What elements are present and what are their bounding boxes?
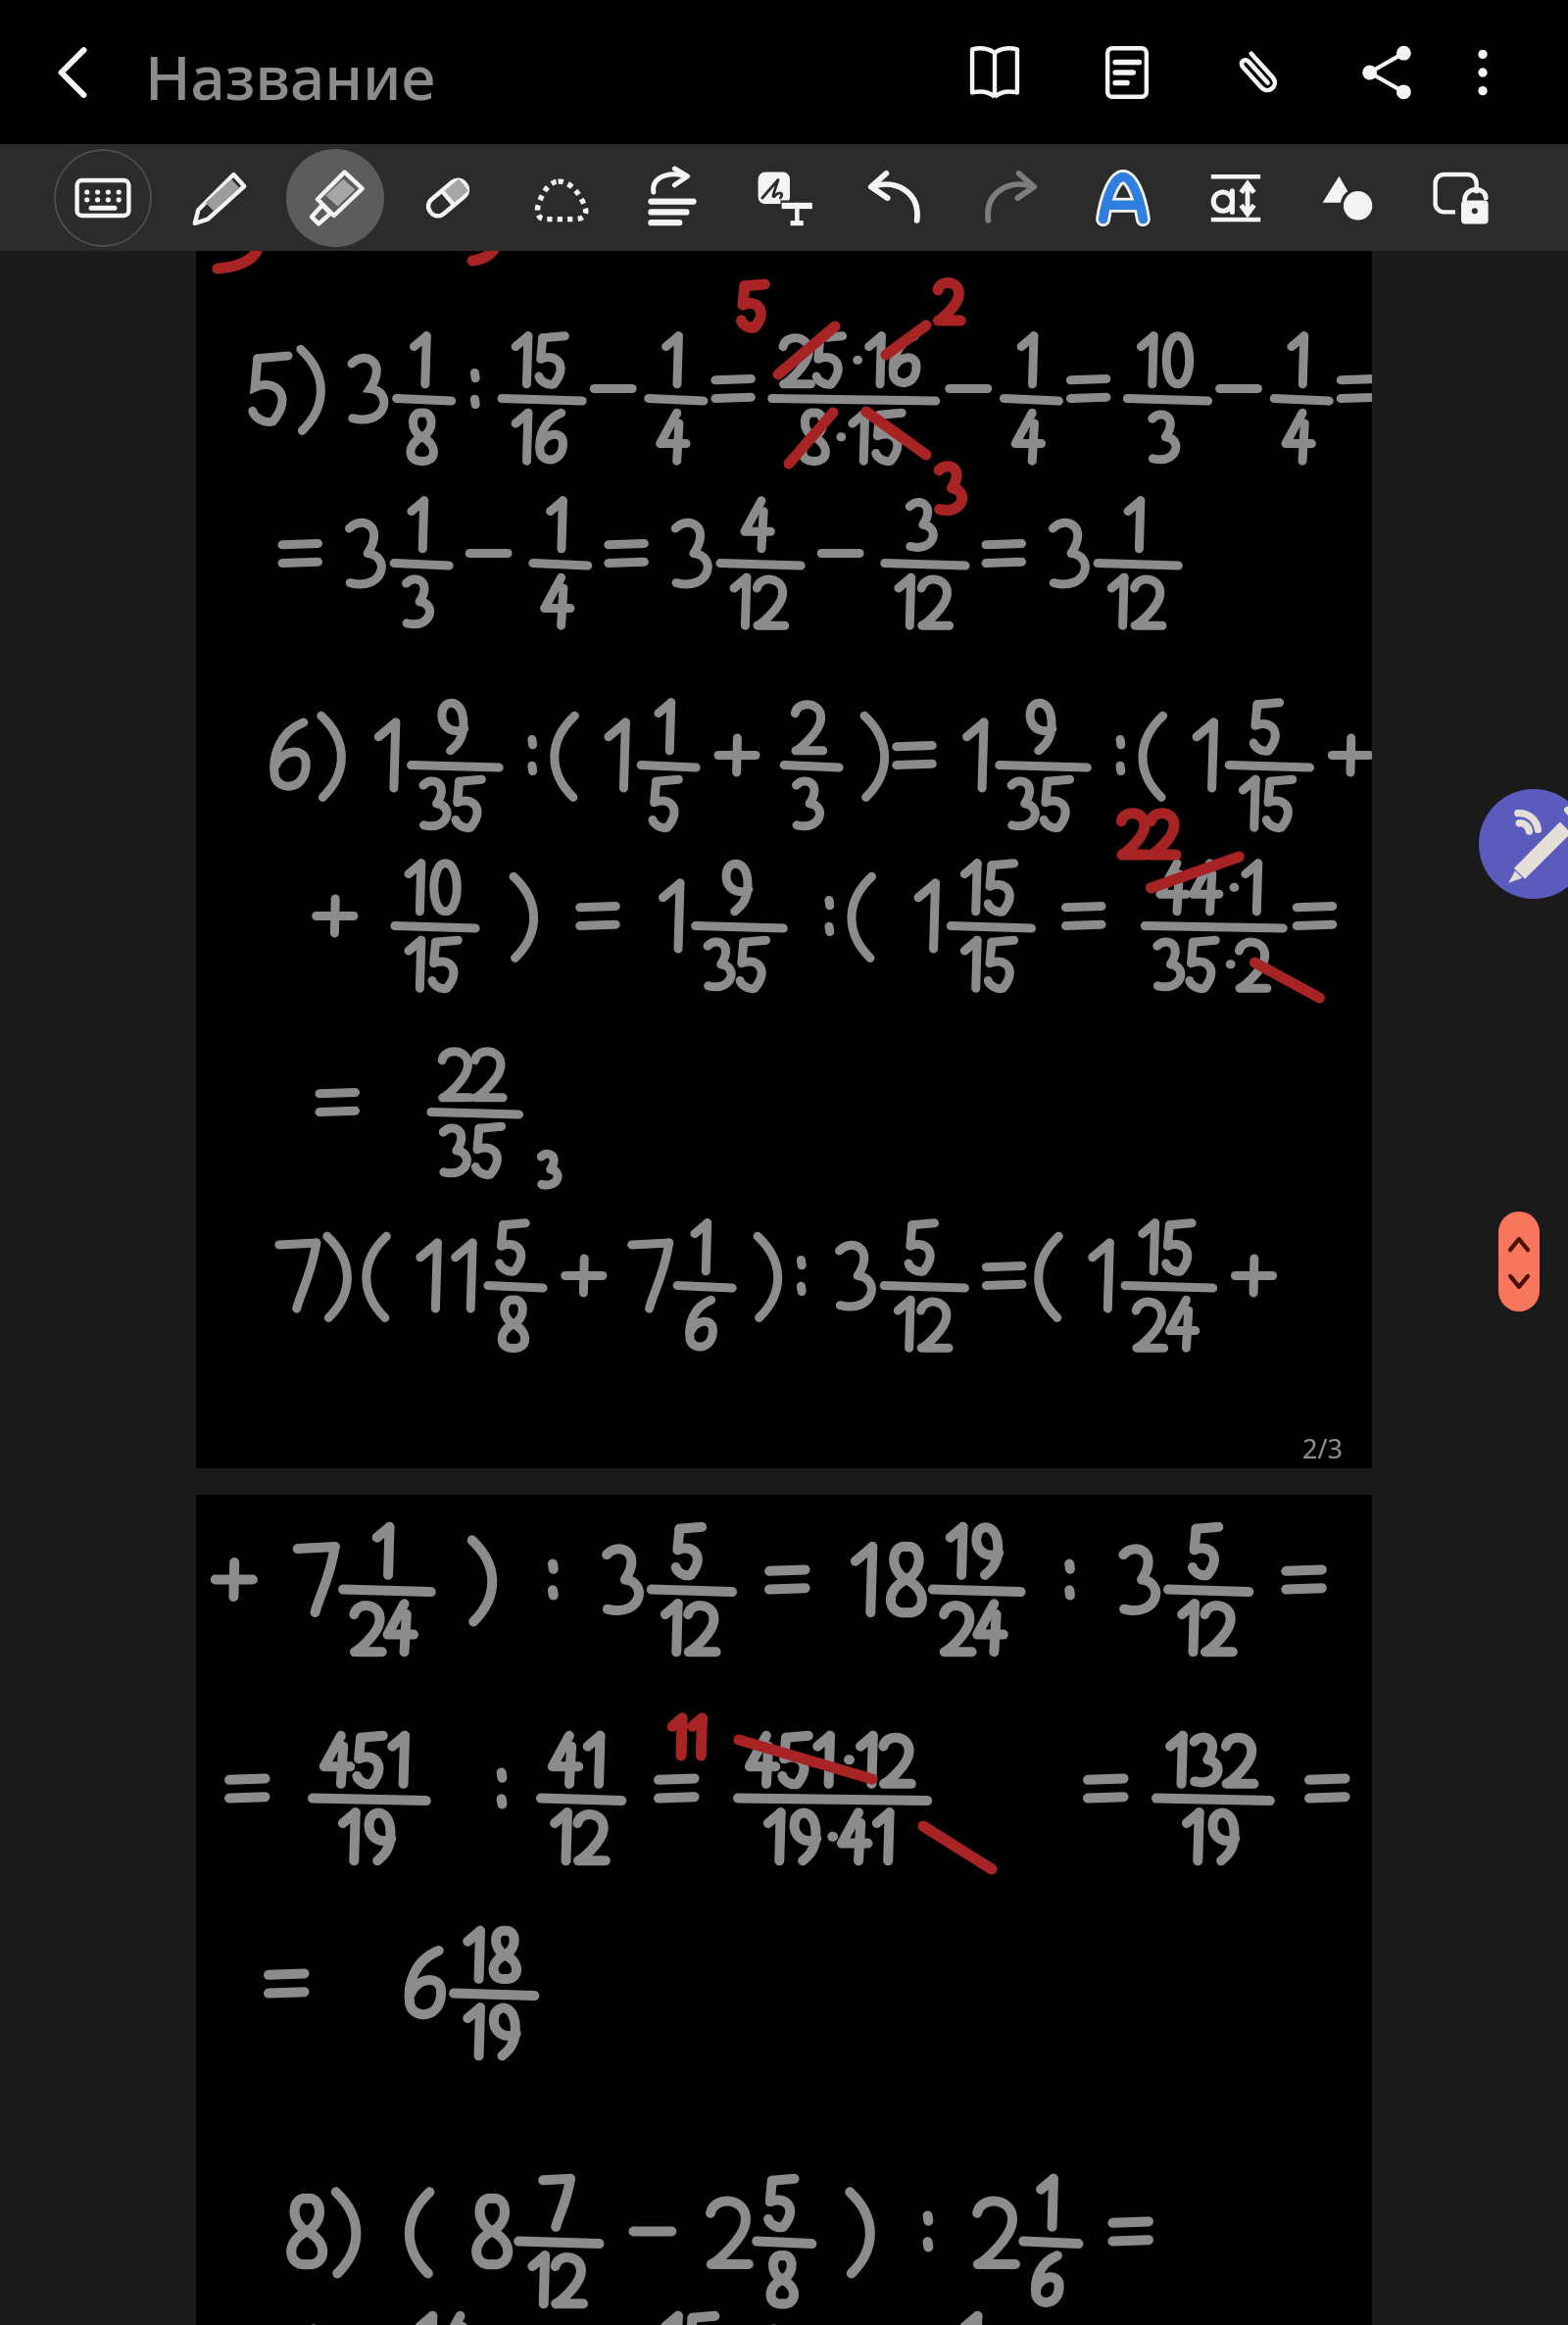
button[interactable]: Lock canvas (1410, 144, 1512, 251)
button[interactable]: Notes (1076, 22, 1178, 124)
button[interactable]: Share (1336, 22, 1438, 124)
button[interactable]: Auto format (1072, 144, 1174, 251)
button[interactable]: Shapes (1298, 144, 1399, 251)
button[interactable]: Note page 2 (196, 251, 1372, 1468)
button[interactable]: Scroll up and down (1498, 1212, 1540, 1311)
button[interactable]: More options (1432, 22, 1534, 124)
button[interactable]: Redo (958, 144, 1060, 251)
button[interactable]: Attach (1208, 22, 1310, 124)
button[interactable]: Keyboard (52, 144, 154, 251)
button[interactable]: Highlighter (284, 144, 386, 251)
button[interactable]: Back (35, 35, 110, 110)
button[interactable]: Text size (1185, 144, 1287, 251)
button[interactable]: Eraser (397, 144, 499, 251)
button[interactable]: Text alignment (621, 144, 723, 251)
button[interactable]: Note page 3 (196, 1495, 1372, 2325)
button[interactable]: Convert to text (733, 144, 835, 251)
button[interactable]: Handwriting assistant (1479, 789, 1568, 899)
button[interactable]: Undo (845, 144, 947, 251)
button[interactable]: Select (510, 144, 612, 251)
staticText: Название (145, 35, 436, 118)
staticText: 2/3 (1302, 1430, 1343, 1466)
button[interactable]: Reading mode (944, 22, 1046, 124)
button[interactable]: Pen (169, 144, 270, 251)
